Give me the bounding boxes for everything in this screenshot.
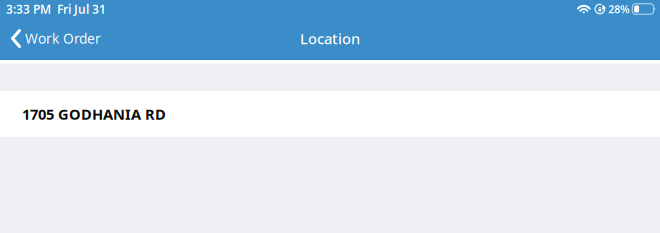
button[interactable]: 1705 GODHANIA RD — [0, 91, 660, 137]
staticText: 3:33 PM Fri Jul 31 — [6, 1, 106, 17]
staticText: 1705 GODHANIA RD — [22, 104, 166, 124]
staticText: Location — [300, 29, 360, 48]
staticText: 28% — [608, 2, 629, 16]
staticText: Work Order — [25, 29, 101, 48]
button[interactable]: Work Order — [0, 20, 111, 57]
